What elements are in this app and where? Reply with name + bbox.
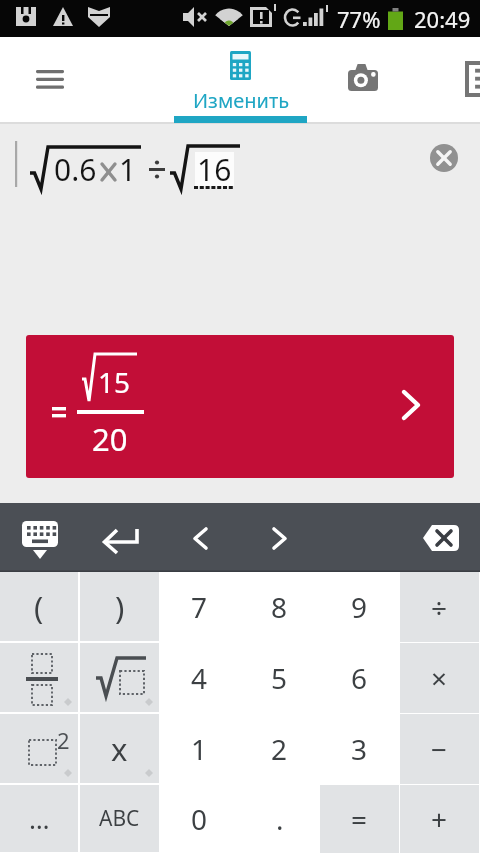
staticText: 20 <box>92 418 128 460</box>
button[interactable]: 5 <box>240 643 319 713</box>
staticText: 16 <box>197 149 232 190</box>
button[interactable]: × <box>400 643 479 713</box>
button[interactable]: Camera <box>327 37 399 124</box>
staticText: 8 <box>271 588 288 626</box>
button[interactable] <box>0 643 78 712</box>
staticText: × <box>431 659 448 697</box>
button[interactable]: Next <box>240 503 320 572</box>
staticText: − <box>431 730 448 768</box>
staticText: 20:49 <box>414 4 471 34</box>
button[interactable]: + <box>400 785 479 853</box>
button[interactable]: ) <box>80 572 159 641</box>
staticText: 9 <box>351 588 368 626</box>
staticText: 0.6 <box>54 149 97 190</box>
button[interactable]: ABC <box>80 785 159 852</box>
button[interactable]: = <box>320 785 399 853</box>
button[interactable]: Clear <box>430 144 458 172</box>
staticText: . <box>276 800 284 838</box>
button[interactable]: 4 <box>160 643 239 713</box>
staticText: 4 <box>191 659 208 697</box>
button[interactable]: ( <box>0 572 78 641</box>
staticText: 3 <box>351 730 368 768</box>
button[interactable]: Previous <box>160 503 240 572</box>
button[interactable]: Menu <box>0 37 100 124</box>
staticText: 7 <box>191 588 208 626</box>
button[interactable]: − <box>400 714 479 784</box>
button[interactable] <box>80 643 159 712</box>
button[interactable]: ÷ <box>400 572 479 642</box>
staticText: 2 <box>57 725 70 755</box>
staticText: … <box>29 801 50 836</box>
staticText: 6 <box>351 659 368 697</box>
button[interactable]: … <box>0 785 78 852</box>
staticText: 2 <box>271 730 288 768</box>
staticText: ( <box>34 586 44 628</box>
staticText: = <box>351 800 368 838</box>
staticText: ÷ <box>431 588 448 626</box>
button[interactable]: 1 <box>160 714 239 784</box>
button[interactable]: 0 <box>160 785 239 853</box>
button[interactable]: 9 <box>320 572 399 642</box>
button[interactable]: 2 <box>0 714 78 783</box>
staticText: 77% <box>337 4 381 34</box>
button[interactable]: Изменить <box>174 37 307 124</box>
button[interactable]: Hide keyboard <box>0 503 80 572</box>
button[interactable]: Notebook <box>440 37 480 124</box>
button[interactable]: 8 <box>240 572 319 642</box>
staticText: 0 <box>191 800 208 838</box>
button[interactable]: x <box>80 714 159 783</box>
button[interactable]: Backspace <box>400 503 480 572</box>
staticText: x <box>111 728 128 770</box>
button[interactable]: . <box>240 785 319 853</box>
staticText: ABC <box>99 804 140 833</box>
staticText: Изменить <box>193 87 290 114</box>
button[interactable]: 7 <box>160 572 239 642</box>
staticText: 1 <box>191 730 208 768</box>
button[interactable]: Enter <box>80 503 160 572</box>
staticText: + <box>431 800 448 838</box>
button[interactable]: 2 <box>240 714 319 784</box>
staticText: 1 <box>119 149 137 190</box>
button[interactable]: 6 <box>320 643 399 713</box>
button[interactable]: 15 <box>26 335 454 478</box>
staticText: ) <box>115 586 125 628</box>
staticText: 15 <box>98 363 131 401</box>
staticText: 5 <box>271 659 288 697</box>
button[interactable]: 3 <box>320 714 399 784</box>
